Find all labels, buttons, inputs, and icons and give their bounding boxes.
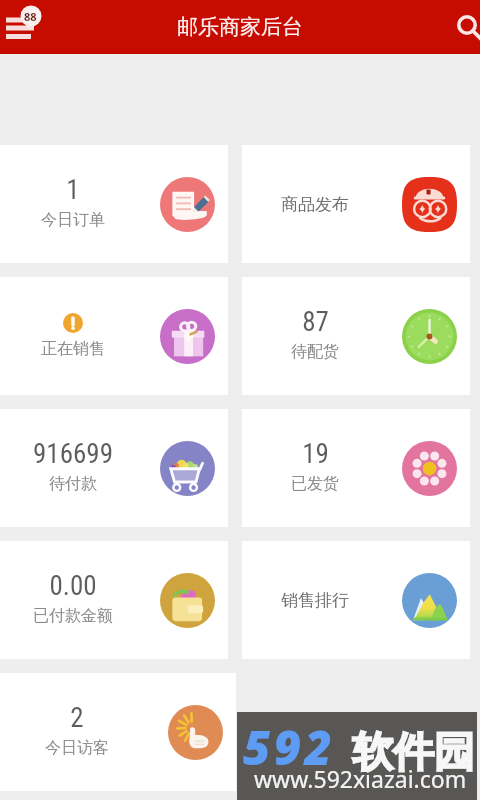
staticText: 正在销售 [41,339,105,359]
button[interactable]: 916699 [0,409,228,527]
button[interactable]: 正在销售 [0,277,228,395]
button[interactable]: 2 [0,673,236,791]
staticText: 0.00 [49,570,97,602]
staticText: 待付款 [49,474,97,494]
button[interactable]: 商品发布 [242,145,470,263]
button[interactable]: 19 [242,409,470,527]
staticText: 88 [24,9,37,24]
staticText: 1 [66,174,80,206]
button[interactable]: Search [432,0,480,54]
staticText: 已付款金额 [33,606,113,626]
button[interactable]: 1 [0,145,228,263]
staticText: 商品发布 [281,194,349,215]
button[interactable]: 87 [242,277,470,395]
staticText: 916699 [33,438,113,470]
staticText: 今日访客 [45,738,109,758]
button[interactable]: Menu [0,0,52,54]
staticText: 2 [70,702,84,734]
staticText: 邮乐商家后台 [177,14,303,40]
staticText: 87 [302,306,329,338]
staticText: 待配货 [291,342,339,362]
staticText: 销售排行 [281,590,349,611]
staticText: 已发货 [291,474,339,494]
staticText: 19 [302,438,329,470]
staticText: 软件园 [352,727,475,779]
button[interactable]: 销售排行 [242,541,470,659]
staticText: 592 [243,715,336,779]
button[interactable]: 0.00 [0,541,228,659]
staticText: 今日订单 [41,210,105,230]
staticText: www.592xiazai.com [254,763,467,794]
